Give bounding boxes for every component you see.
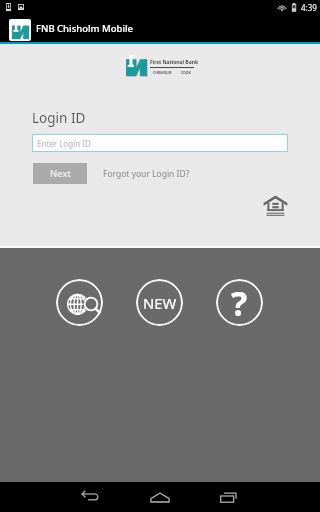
button[interactable]: Recent apps xyxy=(199,482,259,512)
button[interactable]: Forgot your Login ID? xyxy=(103,168,190,180)
staticText: FNB Chisholm Mobile xyxy=(36,22,134,35)
staticText: ? xyxy=(231,280,248,326)
button[interactable]: Next xyxy=(33,163,87,184)
button[interactable]: What's new xyxy=(136,279,183,326)
staticText: 4:39 xyxy=(301,2,317,13)
staticText: COOK xyxy=(181,70,191,75)
staticText: Login ID xyxy=(32,109,86,127)
staticText: Enter Login ID xyxy=(37,138,91,149)
staticText: First National Bank xyxy=(150,59,199,66)
staticText: NEW xyxy=(143,293,177,313)
button[interactable]: Home xyxy=(130,482,190,512)
staticText: CHISHOLM xyxy=(153,70,172,75)
staticText: Next xyxy=(50,167,71,180)
button[interactable]: Enter Login ID xyxy=(32,134,288,152)
button[interactable]: Help xyxy=(216,279,263,326)
button[interactable]: Back xyxy=(61,482,121,512)
button[interactable]: App icon xyxy=(9,19,31,41)
button[interactable]: Find locations xyxy=(56,279,103,326)
staticText: Forgot your Login ID? xyxy=(103,168,190,180)
